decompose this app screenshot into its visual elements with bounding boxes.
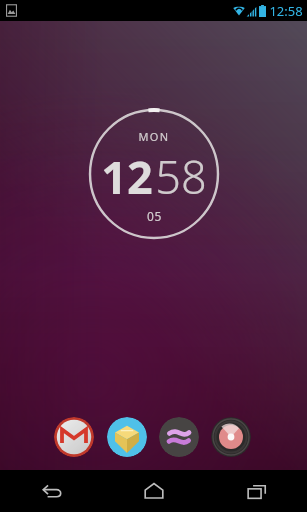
other: Screenshot captured: [5, 4, 18, 17]
staticText: 58: [155, 146, 207, 207]
button[interactable]: Recent apps: [205, 470, 307, 512]
staticText: 05: [147, 208, 162, 224]
button[interactable]: Music: [211, 417, 251, 457]
button[interactable]: Shortcut: [159, 417, 199, 457]
staticText: MON: [138, 129, 170, 144]
button[interactable]: Clock widget: [88, 108, 220, 240]
button[interactable]: Home: [103, 470, 205, 512]
button[interactable]: Back: [0, 470, 103, 512]
staticText: 12: [101, 146, 153, 207]
button[interactable]: Packages: [107, 417, 147, 457]
staticText: 12:58: [269, 2, 303, 20]
button[interactable]: Gmail: [54, 417, 94, 457]
